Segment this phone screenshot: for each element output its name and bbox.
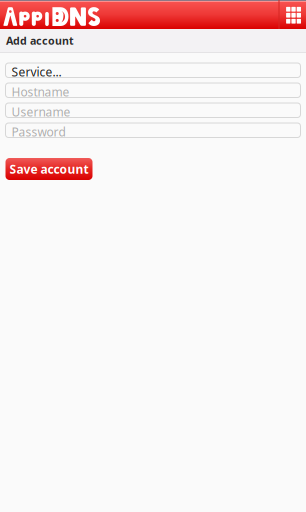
- button[interactable]: Menu: [278, 0, 306, 29]
- staticText: Save account: [9, 161, 88, 177]
- staticText: Hostname: [11, 84, 69, 100]
- button[interactable]: Password: [5, 123, 300, 137]
- button[interactable]: Hostname: [5, 83, 300, 97]
- staticText: Add account: [6, 33, 74, 48]
- staticText: Username: [11, 104, 70, 120]
- button[interactable]: Save account: [5, 158, 92, 180]
- staticText: Password: [11, 124, 65, 140]
- button[interactable]: Username: [5, 103, 300, 117]
- staticText: Service...: [11, 64, 61, 80]
- button[interactable]: Service...: [5, 63, 300, 77]
